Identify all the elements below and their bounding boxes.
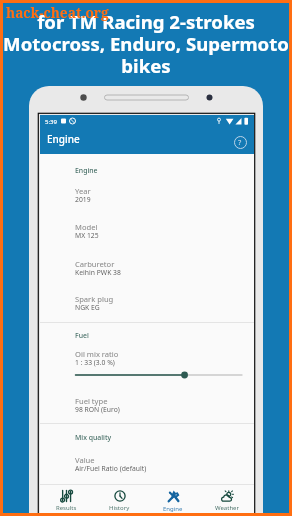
staticText: Carburetor xyxy=(75,259,115,269)
staticText: Keihin PWK 38 xyxy=(75,268,121,277)
staticText: hack-cheat.org xyxy=(6,3,109,22)
staticText: for TM Racing 2-strokes Motocross, Endur… xyxy=(0,9,292,79)
button[interactable]: Weather xyxy=(200,485,254,516)
staticText: NGK EG xyxy=(75,303,100,312)
button[interactable]: Results xyxy=(40,485,93,516)
staticText: Spark plug xyxy=(75,294,114,304)
staticText: 98 RON (Euro) xyxy=(75,405,120,414)
staticText: Fuel type xyxy=(75,396,108,406)
staticText: MX 125 xyxy=(75,231,99,240)
staticText: History xyxy=(109,504,130,512)
button[interactable]: Spark plug xyxy=(40,294,254,318)
staticText: Results xyxy=(56,504,77,512)
staticText: Air/Fuel Ratio (default) xyxy=(75,464,147,473)
button[interactable]: Carburetor xyxy=(40,259,254,283)
staticText: Year xyxy=(75,186,91,196)
staticText: Mix quality xyxy=(75,433,112,442)
staticText: 1 : 33 (3.0 %) xyxy=(75,358,115,367)
staticText: ? xyxy=(238,137,242,147)
staticText: Weather xyxy=(215,504,239,512)
staticText: Model xyxy=(75,222,98,232)
button[interactable]: Engine xyxy=(146,485,200,516)
staticText: 2019 xyxy=(75,195,91,204)
staticText: Value xyxy=(75,455,95,465)
button[interactable]: Help xyxy=(230,132,250,152)
staticText: Engine xyxy=(163,505,183,513)
staticText: 5:39 xyxy=(45,118,57,126)
button[interactable]: Model xyxy=(40,222,254,246)
staticText: Fuel xyxy=(75,331,89,340)
button[interactable]: Year xyxy=(40,186,254,210)
button[interactable]: Fuel type xyxy=(40,396,254,420)
staticText: Engine xyxy=(75,166,98,175)
button[interactable]: History xyxy=(93,485,146,516)
staticText: Engine xyxy=(47,132,80,146)
button[interactable]: Oil mix ratio xyxy=(40,349,254,381)
staticText: Oil mix ratio xyxy=(75,349,119,359)
button[interactable]: Value xyxy=(40,455,254,479)
